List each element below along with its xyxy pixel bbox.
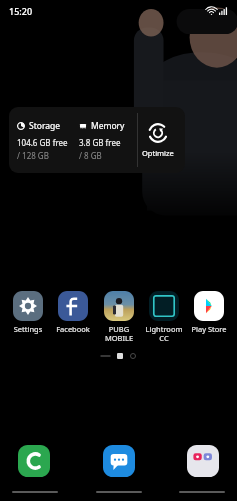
staticText: / 8 GB bbox=[79, 150, 102, 161]
staticText: Facebook bbox=[52, 324, 94, 334]
staticText: Memory bbox=[91, 120, 125, 132]
staticText: 3.8 GB free bbox=[79, 137, 121, 148]
staticText: PUBG MOBILE bbox=[98, 324, 140, 343]
button[interactable] bbox=[12, 491, 58, 493]
button[interactable]: Facebook bbox=[51, 289, 95, 336]
button[interactable]: Settings bbox=[6, 289, 50, 336]
staticText: Play Store bbox=[188, 324, 230, 334]
button[interactable]: Storage bbox=[9, 107, 185, 173]
button[interactable] bbox=[179, 491, 225, 493]
button[interactable]: Messages bbox=[103, 445, 135, 477]
staticText: / 128 GB bbox=[17, 150, 49, 161]
staticText: Storage bbox=[29, 120, 61, 132]
staticText: 104.6 GB free bbox=[17, 137, 68, 148]
button[interactable]: Phone bbox=[18, 445, 50, 477]
staticText: 15:20 bbox=[9, 5, 33, 17]
button[interactable] bbox=[96, 491, 142, 493]
button[interactable]: Lightroom CC bbox=[142, 289, 186, 345]
button[interactable]: PUBG MOBILE bbox=[97, 289, 141, 345]
staticText: Optimize bbox=[142, 148, 174, 158]
button[interactable]: Play Store bbox=[187, 289, 231, 336]
staticText: Lightroom CC bbox=[143, 324, 185, 343]
staticText: Settings bbox=[7, 324, 49, 334]
button[interactable]: Optimize bbox=[138, 107, 177, 173]
button[interactable]: Apps folder bbox=[187, 445, 219, 477]
